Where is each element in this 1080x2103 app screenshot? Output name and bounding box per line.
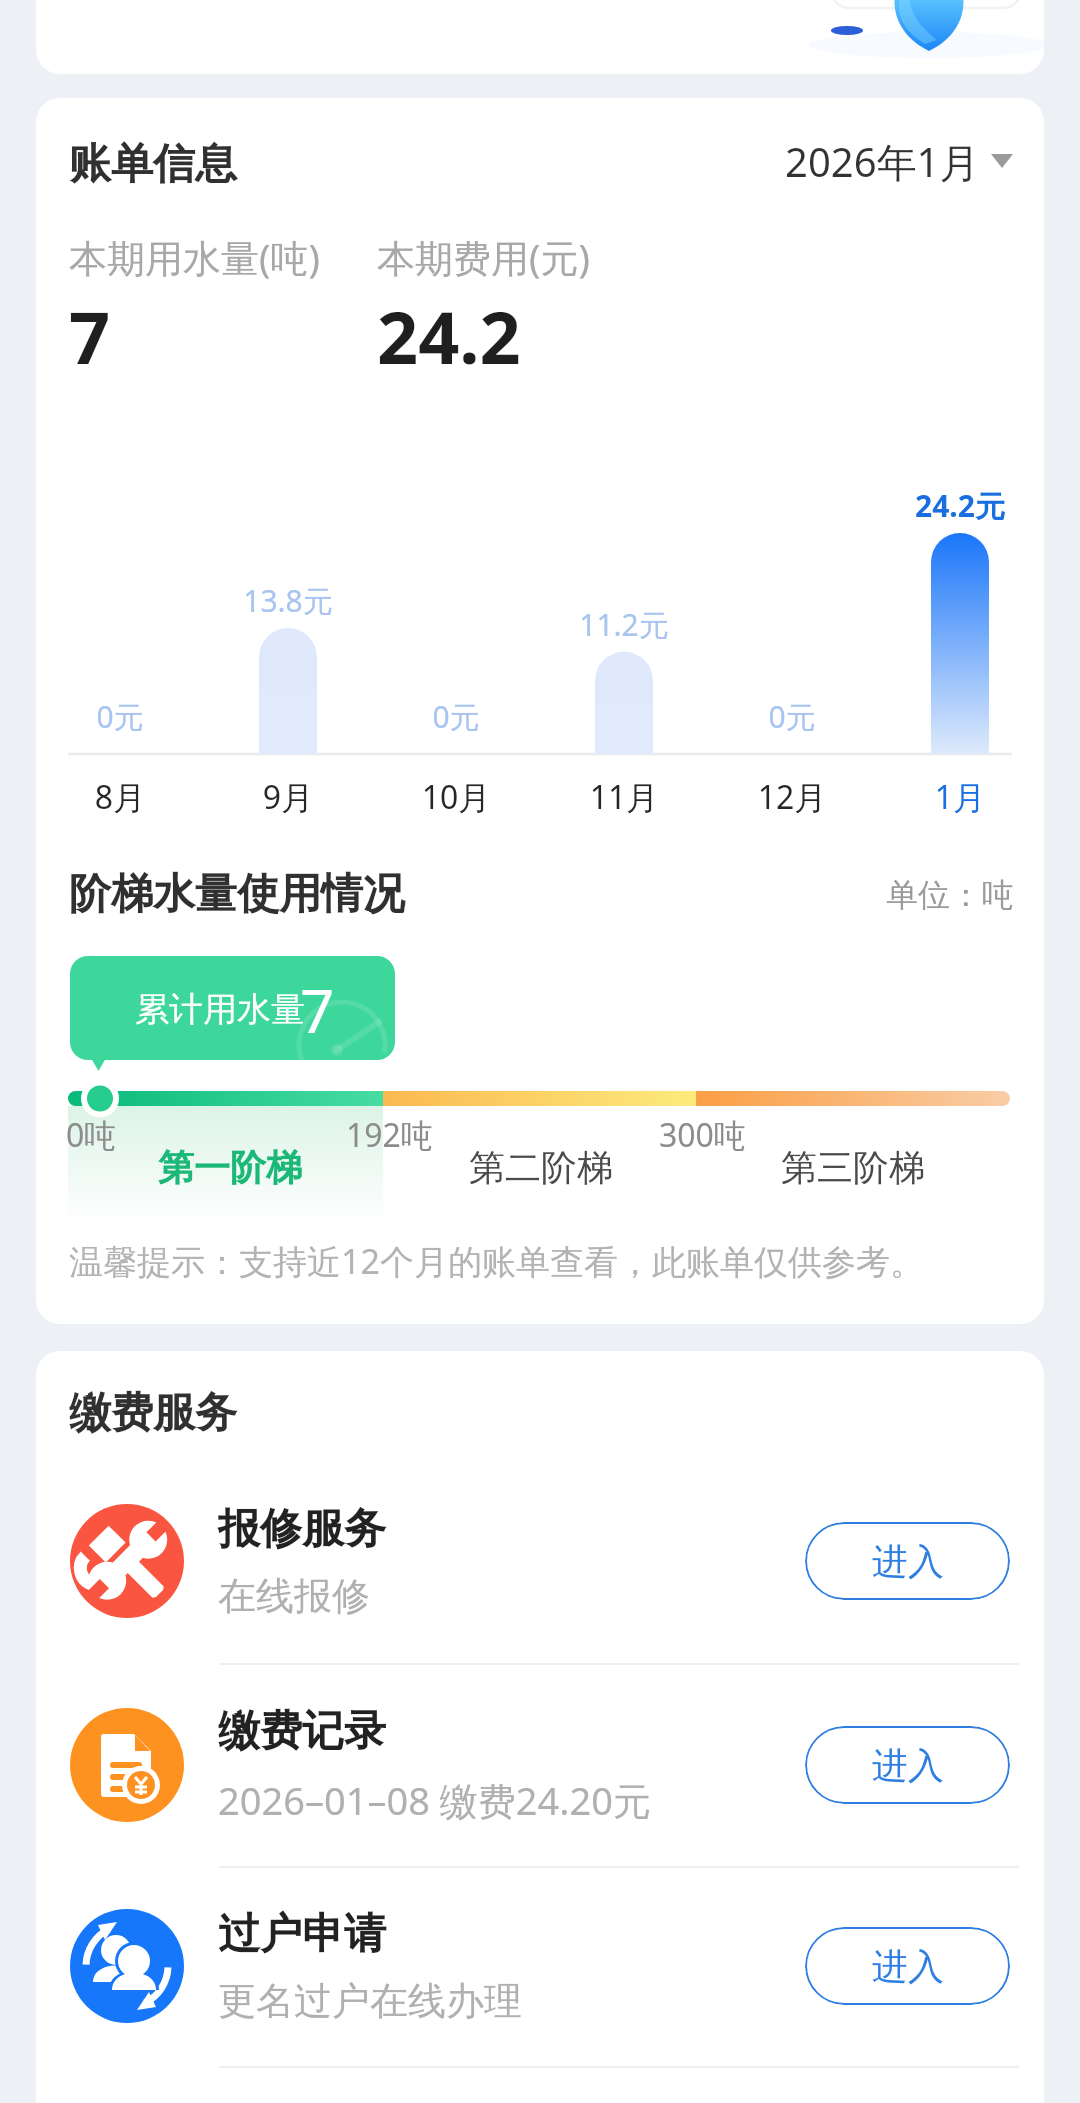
staticText: 更名过户在线办理 xyxy=(218,1977,522,2025)
staticText: 第三阶梯 xyxy=(781,1145,925,1190)
staticText: 8月 xyxy=(36,775,204,819)
staticText: 在线报修 xyxy=(218,1572,370,1620)
staticText: 2026–01–08 缴费24.20元 xyxy=(218,1774,651,1826)
staticText: 9月 xyxy=(204,775,372,819)
staticText: 进入 xyxy=(872,1539,944,1584)
staticText: 12月 xyxy=(708,775,876,819)
button[interactable]: 进入 xyxy=(805,1522,1010,1600)
button[interactable]: 进入 xyxy=(805,1726,1010,1804)
staticText: 温馨提示：支持近12个月的账单查看，此账单仅供参考。 xyxy=(69,1238,924,1284)
staticText: 报修服务 xyxy=(218,1503,386,1556)
staticText: 阶梯水量使用情况 xyxy=(69,868,405,921)
staticText: 进入 xyxy=(872,1944,944,1989)
staticText: 本期费用(元) xyxy=(377,231,590,283)
button[interactable]: 报修服务 xyxy=(36,1471,1044,1651)
staticText: 7 xyxy=(69,287,111,385)
staticText: 0元 xyxy=(36,696,204,737)
staticText: 2026年1月 xyxy=(785,134,980,189)
staticText: 192吨 xyxy=(346,1113,433,1157)
staticText: 7 xyxy=(300,969,335,1051)
staticText: 第一阶梯 xyxy=(158,1145,302,1190)
button[interactable]: 2026年1月 xyxy=(785,133,1013,189)
staticText: 1月 xyxy=(876,775,1044,819)
staticText: 单位：吨 xyxy=(886,875,1014,915)
staticText: 账单信息 xyxy=(69,138,237,191)
staticText: 300吨 xyxy=(659,1113,746,1157)
staticText: 0元 xyxy=(708,696,876,737)
staticText: 缴费记录 xyxy=(218,1705,386,1758)
staticText: 11.2元 xyxy=(540,604,708,645)
staticText: 0吨 xyxy=(66,1113,117,1157)
staticText: 本期用水量(吨) xyxy=(69,231,320,283)
staticText: 第二阶梯 xyxy=(469,1145,613,1190)
staticText: 24.2 xyxy=(377,287,521,385)
button[interactable]: 进入 xyxy=(805,1927,1010,2005)
staticText: 11月 xyxy=(540,775,708,819)
staticText: 10月 xyxy=(372,775,540,819)
staticText: 24.2元 xyxy=(876,485,1044,526)
staticText: 13.8元 xyxy=(204,580,372,621)
staticText: 过户申请 xyxy=(218,1908,386,1961)
button[interactable]: 缴费记录 xyxy=(36,1675,1044,1855)
button[interactable]: 过户申请 xyxy=(36,1876,1044,2056)
staticText: 缴费服务 xyxy=(69,1387,237,1440)
staticText: 0元 xyxy=(372,696,540,737)
staticText: 累计用水量 xyxy=(135,988,305,1031)
staticText: 进入 xyxy=(872,1743,944,1788)
